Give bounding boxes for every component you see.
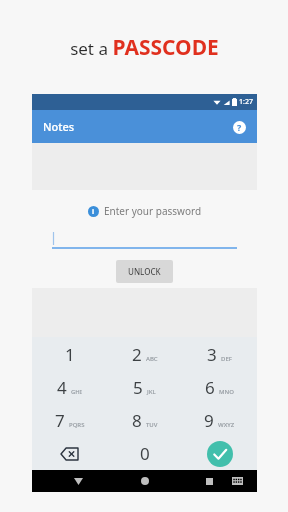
staticText: 9 — [204, 409, 214, 432]
staticText: i — [92, 207, 95, 217]
button[interactable]: Keyboard — [229, 473, 245, 489]
button[interactable]: 1 — [32, 337, 107, 371]
button[interactable] — [52, 231, 237, 249]
staticText: Notes — [43, 119, 75, 134]
button[interactable]: UNLOCK — [116, 260, 173, 283]
staticText: 3 — [207, 343, 217, 366]
button[interactable]: Back — [58, 470, 98, 492]
staticText: WXYZ — [218, 421, 235, 429]
button[interactable]: Home — [125, 470, 165, 492]
button[interactable]: Recents — [201, 473, 217, 489]
button[interactable]: Confirm — [182, 437, 257, 470]
staticText: 1 — [65, 343, 75, 366]
staticText: 7 — [55, 409, 65, 432]
button[interactable]: 2 — [107, 337, 182, 371]
staticText: GHI — [71, 388, 82, 396]
staticText: TUV — [146, 421, 158, 429]
staticText: JKL — [147, 388, 156, 396]
staticText: Enter your password — [104, 204, 202, 218]
button[interactable]: 6 — [182, 371, 257, 404]
staticText: 4 — [57, 376, 67, 399]
staticText: set a PASSCODE — [70, 33, 219, 62]
staticText: 8 — [132, 409, 142, 432]
button[interactable]: 7 — [32, 404, 107, 437]
button[interactable]: 9 — [182, 404, 257, 437]
button[interactable]: Backspace — [32, 437, 107, 470]
staticText: PQRS — [69, 421, 85, 429]
button[interactable]: 0 — [107, 437, 182, 470]
button[interactable]: 8 — [107, 404, 182, 437]
staticText: ? — [237, 121, 242, 133]
button[interactable]: 5 — [107, 371, 182, 404]
button[interactable]: 3 — [182, 337, 257, 371]
staticText: 5 — [133, 376, 143, 399]
button[interactable]: Help — [229, 117, 249, 137]
staticText: UNLOCK — [128, 266, 161, 277]
staticText: 6 — [205, 376, 215, 399]
staticText: ABC — [146, 355, 158, 363]
staticText: 1:27 — [239, 97, 253, 107]
staticText: 0 — [140, 442, 150, 465]
staticText: MNO — [219, 388, 234, 396]
button[interactable]: 4 — [32, 371, 107, 404]
staticText: 2 — [132, 343, 142, 366]
staticText: DEF — [221, 355, 232, 363]
